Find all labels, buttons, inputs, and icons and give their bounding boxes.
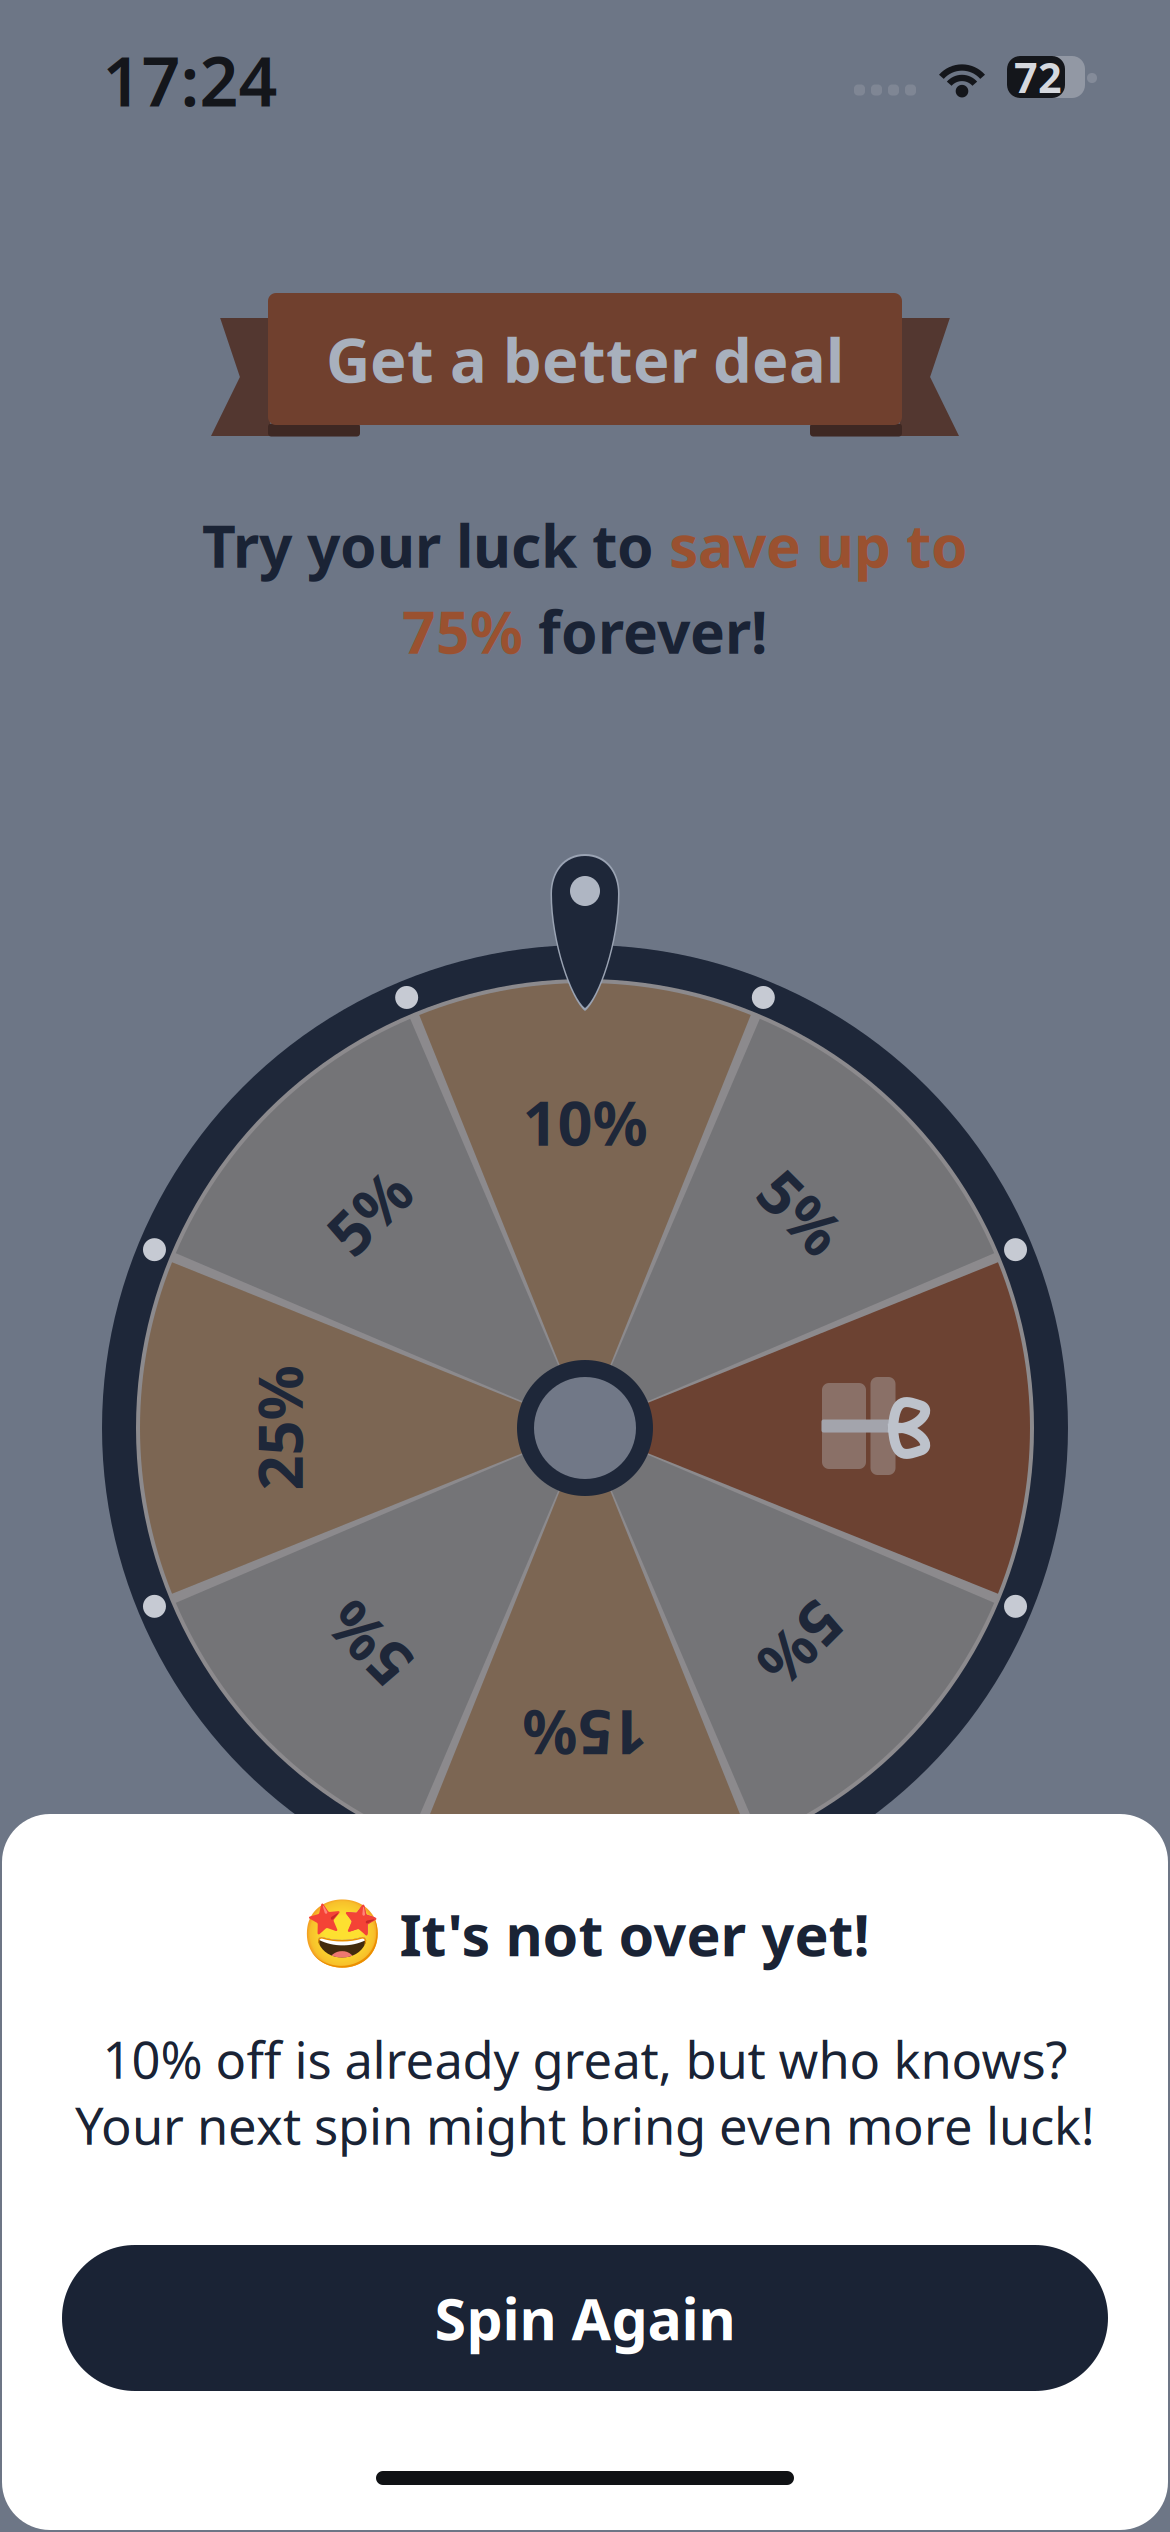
staticText: forever! [523,592,768,670]
staticText: 15% [522,1693,647,1775]
staticText: Get a better deal [326,318,844,400]
staticText: save up to [669,506,968,584]
staticText: 25% [216,1387,341,1469]
staticText: 17:24 [102,35,277,125]
staticText: 5% [324,1604,414,1685]
staticText: It's not over yet! [399,1896,869,1972]
staticText: 10% [522,1081,647,1163]
staticText: 75% [402,592,523,670]
staticText: 72 [1014,50,1062,104]
staticText: 5% [324,1171,414,1252]
staticText: Try your luck to [202,506,669,584]
button[interactable]: Prize wheel [0,0,1170,2532]
button[interactable]: Spin Again [62,2245,1108,2391]
staticText: 5% [756,1171,846,1252]
staticText: 10% off is already great, but who knows? [102,2025,1067,2093]
staticText: Spin Again [434,2280,735,2356]
staticText: Your next spin might bring even more luc… [75,2091,1095,2159]
staticText: 5% [756,1604,846,1685]
staticText: 🤩 [300,1896,383,1972]
